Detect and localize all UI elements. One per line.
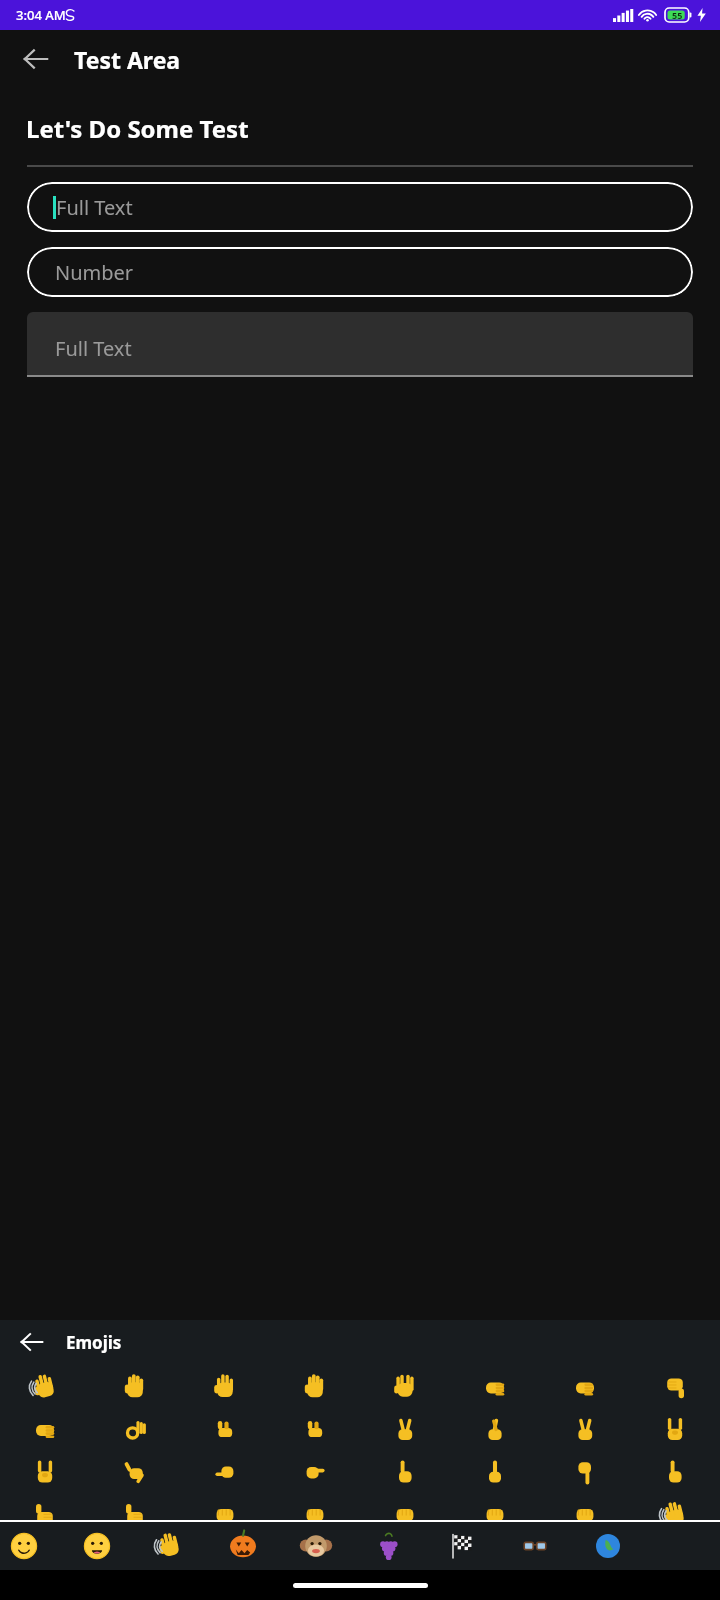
staticText: Number [55, 259, 134, 286]
staticText: 3:04 AM [16, 6, 66, 24]
button[interactable]: Full Text [27, 182, 693, 232]
staticText: Let's Do Some Test [26, 112, 249, 145]
staticText: Full Text [55, 335, 132, 362]
button[interactable]: Full Text [27, 312, 693, 375]
button[interactable]: Back from emojis [11, 1321, 53, 1363]
staticText: Test Area [74, 44, 181, 75]
button[interactable]: Back [12, 35, 60, 83]
staticText: 55 [672, 9, 683, 21]
staticText: Full Text [56, 194, 133, 221]
staticText: Emojis [66, 1331, 122, 1354]
button[interactable]: Number [27, 247, 693, 297]
